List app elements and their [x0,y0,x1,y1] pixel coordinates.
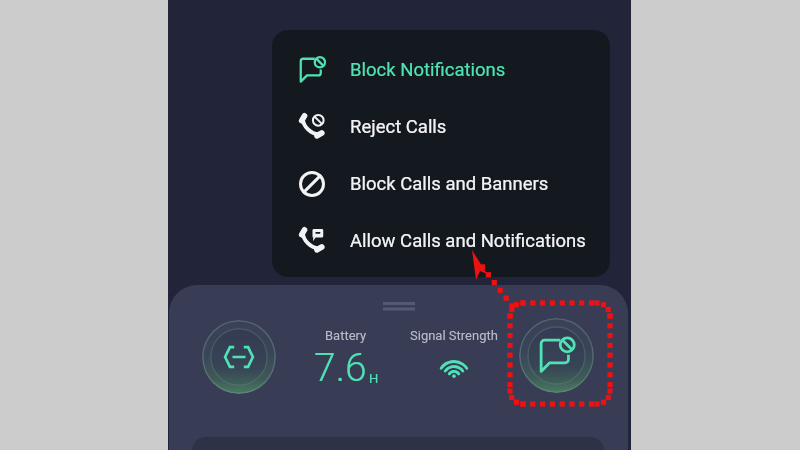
staticText: Reject Calls [350,116,447,138]
button[interactable]: Expand [202,320,276,394]
button[interactable]: Allow Calls and Notifications [272,212,610,269]
button[interactable]: Block Calls and Banners [272,155,610,212]
staticText: H [369,371,379,386]
staticText: Signal Strength [410,328,498,343]
staticText: Block Notifications [350,59,506,81]
staticText: 7.6 [314,345,367,391]
staticText: Block Calls and Banners [350,173,549,195]
staticText: Battery [325,328,367,343]
button[interactable]: Reject Calls [272,98,610,155]
staticText: Allow Calls and Notifications [350,230,586,252]
button[interactable]: Block notifications [519,318,594,393]
button[interactable]: Block Notifications [272,41,610,98]
